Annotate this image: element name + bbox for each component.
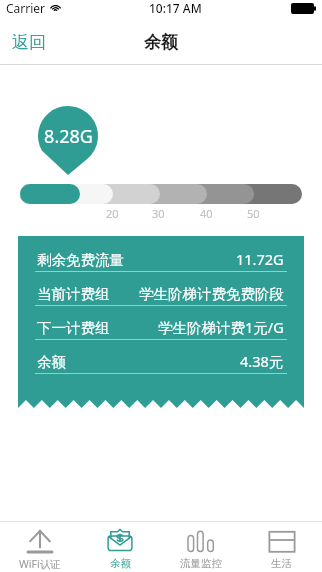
staticText: 剩余免费流量 [37, 251, 124, 269]
staticText: 学生阶梯计费1元/G [158, 317, 284, 337]
other: 余额 [106, 530, 134, 553]
staticText: 40 [200, 206, 213, 220]
staticText: 流量监控 [180, 557, 222, 570]
button[interactable]: 流量监控 [160, 522, 241, 572]
staticText: 10:17 AM [149, 0, 202, 16]
staticText: 30 [152, 206, 165, 220]
staticText: 当前计费组 [37, 285, 110, 303]
staticText: 50 [247, 206, 260, 220]
staticText: 余额 [37, 353, 66, 371]
staticText: 8.28G [44, 124, 93, 149]
staticText: 余额 [144, 32, 178, 53]
button[interactable]: 生活 [241, 522, 322, 572]
staticText: 下一计费组 [37, 319, 110, 337]
staticText: 学生阶梯计费免费阶段 [139, 285, 284, 303]
staticText: Carrier [6, 0, 46, 16]
staticText: 余额 [110, 557, 131, 570]
staticText: WiFi认证 [19, 557, 61, 571]
staticText: 4.38元 [240, 351, 284, 371]
other: 生活 [268, 530, 296, 553]
button[interactable]: WiFi认证 [0, 522, 80, 572]
other: WiFi认证 [26, 530, 54, 553]
staticText: 20 [106, 206, 119, 220]
staticText: 11.72G [236, 249, 284, 269]
staticText: 返回 [12, 32, 46, 53]
staticText: 生活 [271, 557, 292, 570]
other: 流量监控 [187, 530, 215, 553]
button[interactable]: 返回 [8, 28, 50, 57]
button[interactable]: 余额 [80, 522, 160, 572]
